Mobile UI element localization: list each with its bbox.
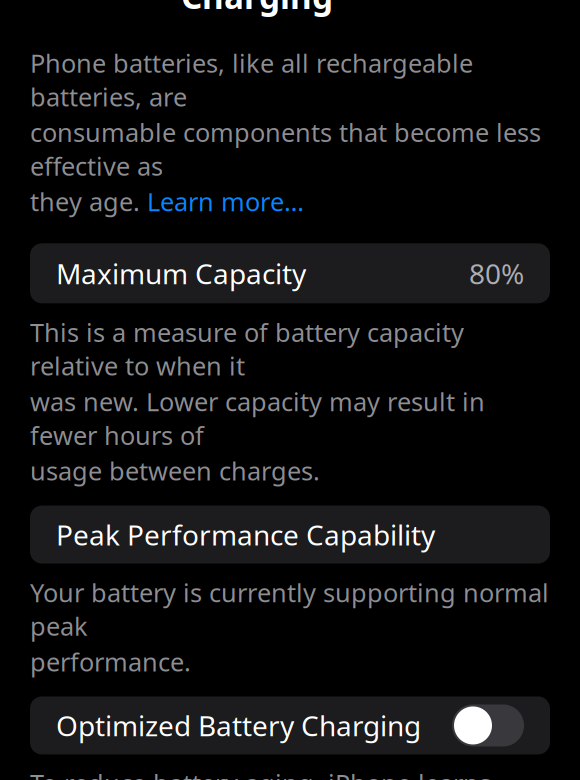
button[interactable]: Learn more… <box>147 185 304 218</box>
staticText: To reduce battery aging, iPhone learns f… <box>30 766 491 780</box>
button[interactable]: Optimized Battery Charging <box>30 696 550 754</box>
staticText: Optimized Battery Charging <box>56 707 421 744</box>
staticText: This is a measure of battery capacity re… <box>30 315 464 383</box>
button[interactable]: Maximum Capacity <box>30 243 550 303</box>
staticText: Maximum Capacity <box>56 255 306 292</box>
staticText: Your battery is currently supporting nor… <box>30 575 549 643</box>
staticText: 80% <box>469 255 524 292</box>
staticText: consumable components that become less e… <box>30 115 541 183</box>
staticText: Phone batteries, like all rechargeable b… <box>30 46 473 113</box>
staticText: Learn more… <box>147 185 304 218</box>
staticText: they age. <box>30 185 147 218</box>
staticText: Battery Health & Charging <box>181 0 460 18</box>
staticText: was new. Lower capacity may result in fe… <box>30 385 485 452</box>
button[interactable]: Peak Performance Capability <box>30 505 550 563</box>
staticText: performance. <box>30 645 191 678</box>
staticText: usage between charges. <box>30 454 320 487</box>
staticText: Peak Performance Capability <box>56 516 435 553</box>
